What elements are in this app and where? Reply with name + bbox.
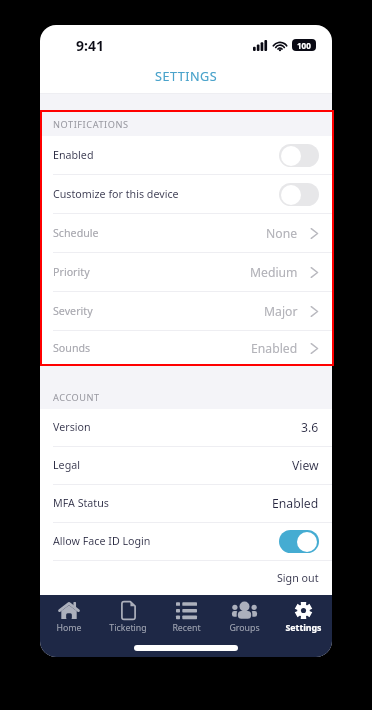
staticText: Customize for this device (53, 187, 179, 202)
staticText: Sign out (277, 571, 319, 586)
staticText: 3.6 (301, 419, 319, 436)
staticText: Medium (250, 264, 298, 281)
staticText: Settings (285, 622, 322, 634)
button[interactable]: Legal (40, 447, 332, 485)
staticText: Schedule (53, 226, 99, 241)
button[interactable]: Customize for this device (40, 175, 332, 214)
staticText: SETTINGS (155, 68, 218, 85)
staticText: Major (264, 303, 298, 320)
staticText: None (266, 225, 298, 242)
button[interactable]: Recent (157, 595, 215, 634)
staticText: ACCOUNT (53, 391, 100, 404)
staticText: View (292, 457, 319, 474)
staticText: 9:41 (76, 36, 104, 55)
staticText: Ticketing (109, 622, 147, 634)
staticText: Enabled (53, 148, 94, 163)
staticText: Allow Face ID Login (53, 534, 151, 549)
button[interactable]: Sign out (265, 564, 332, 593)
staticText: 100 (297, 40, 311, 51)
button[interactable]: MFA Status (40, 485, 332, 523)
button[interactable]: Ticketing (99, 595, 157, 634)
staticText: Groups (229, 622, 260, 634)
staticText: NOTIFICATIONS (53, 118, 129, 131)
staticText: Legal (53, 458, 80, 473)
staticText: Enabled (251, 340, 298, 357)
staticText: MFA Status (53, 496, 109, 511)
button[interactable]: Groups (215, 595, 273, 634)
staticText: Sounds (53, 341, 91, 356)
button[interactable]: Enabled (40, 136, 332, 175)
staticText: Severity (53, 304, 93, 319)
button[interactable]: Settings (274, 595, 332, 634)
button[interactable]: Sounds (40, 331, 332, 366)
button[interactable]: Schedule (40, 214, 332, 253)
staticText: Priority (53, 265, 90, 280)
button[interactable]: Home (40, 595, 98, 634)
button[interactable]: Severity (40, 292, 332, 331)
button[interactable]: Allow Face ID Login (40, 523, 332, 561)
button[interactable]: Priority (40, 253, 332, 292)
staticText: Version (53, 420, 91, 435)
button[interactable]: Version (40, 409, 332, 447)
staticText: Recent (172, 622, 201, 634)
staticText: Enabled (272, 495, 319, 512)
staticText: Home (56, 622, 82, 634)
